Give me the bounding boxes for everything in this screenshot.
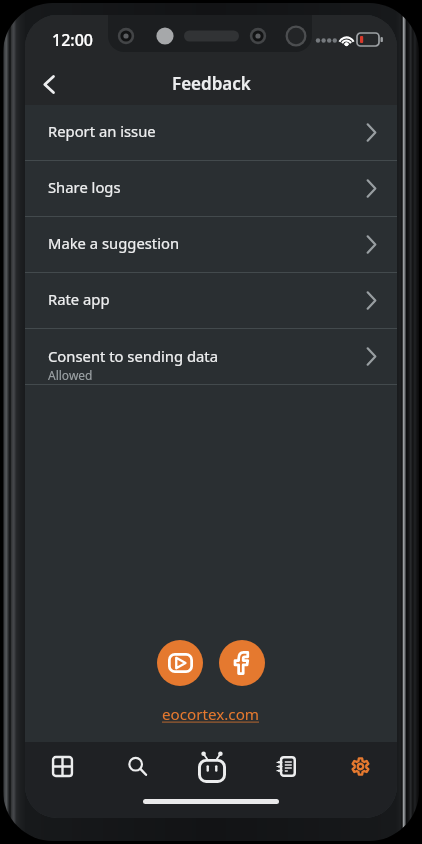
button[interactable]: Share logs bbox=[25, 161, 397, 216]
button[interactable]: Consent to sending data bbox=[25, 329, 397, 384]
staticText: Allowed bbox=[48, 367, 93, 383]
staticText: 12:00 bbox=[52, 29, 93, 51]
staticText: Report an issue bbox=[48, 121, 156, 141]
staticText: Consent to sending data bbox=[48, 346, 218, 366]
button[interactable]: Back bbox=[29, 65, 69, 105]
staticText: Share logs bbox=[48, 177, 121, 197]
button[interactable]: Search bbox=[100, 742, 175, 790]
button[interactable]: eocortex.com bbox=[162, 704, 260, 725]
button[interactable]: Settings bbox=[323, 742, 397, 790]
staticText: Rate app bbox=[48, 289, 110, 309]
staticText: Feedback bbox=[172, 72, 251, 95]
button[interactable]: Journal bbox=[249, 742, 323, 790]
button[interactable]: Rate app bbox=[25, 273, 397, 328]
button[interactable]: Dashboard bbox=[25, 742, 100, 790]
button[interactable]: Assistant bbox=[175, 742, 249, 790]
button[interactable]: Report an issue bbox=[25, 105, 397, 160]
button[interactable]: Facebook bbox=[219, 640, 265, 686]
button[interactable]: Make a suggestion bbox=[25, 217, 397, 272]
button[interactable]: YouTube bbox=[157, 640, 203, 686]
staticText: Make a suggestion bbox=[48, 233, 180, 253]
